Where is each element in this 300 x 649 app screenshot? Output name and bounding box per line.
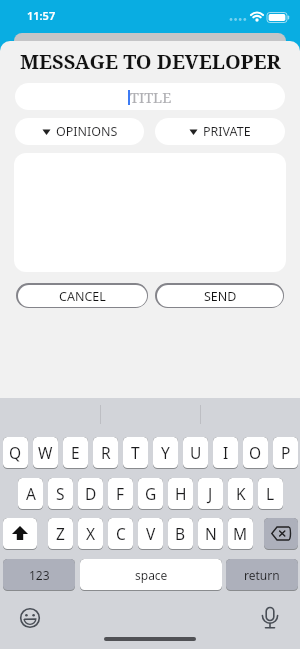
button[interactable]: OPINIONS xyxy=(15,118,144,145)
staticText: PRIVATE xyxy=(203,123,251,140)
staticText: space xyxy=(135,567,168,583)
button[interactable]: L xyxy=(258,478,283,510)
button[interactable]: W xyxy=(33,437,58,469)
button[interactable]: PRIVATE xyxy=(155,118,285,145)
staticText: B xyxy=(175,523,186,544)
staticText: N xyxy=(205,523,217,544)
staticText: E xyxy=(71,442,80,463)
staticText: OPINIONS xyxy=(56,123,118,140)
button[interactable]: F xyxy=(108,478,133,510)
button[interactable] xyxy=(3,518,37,550)
button[interactable] xyxy=(264,518,298,550)
button[interactable]: V xyxy=(138,518,163,550)
button[interactable] xyxy=(259,606,281,632)
staticText: V xyxy=(146,523,156,544)
staticText: U xyxy=(190,442,202,463)
staticText: R xyxy=(101,442,111,463)
button[interactable]: K xyxy=(228,478,253,510)
staticText: MESSAGE TO DEVELOPER xyxy=(20,48,281,75)
button[interactable]: TITLE xyxy=(15,83,285,110)
staticText: H xyxy=(175,483,187,504)
staticText: D xyxy=(85,483,97,504)
staticText: Q xyxy=(9,442,22,463)
button[interactable]: J xyxy=(198,478,223,510)
button[interactable]: CANCEL xyxy=(16,283,148,308)
staticText: A xyxy=(26,483,36,504)
button[interactable]: C xyxy=(108,518,133,550)
staticText: Y xyxy=(161,442,170,463)
button[interactable]: Z xyxy=(48,518,73,550)
staticText: CANCEL xyxy=(59,288,106,305)
button[interactable]: O xyxy=(243,437,268,469)
staticText: return xyxy=(244,567,280,583)
button[interactable]: G xyxy=(138,478,163,510)
button[interactable]: R xyxy=(93,437,118,469)
staticText: TITLE xyxy=(130,87,172,107)
button[interactable]: E xyxy=(63,437,88,469)
button[interactable]: space xyxy=(80,559,222,591)
button[interactable]: Y xyxy=(153,437,178,469)
staticText: K xyxy=(236,483,246,504)
button[interactable]: M xyxy=(228,518,253,550)
staticText: O xyxy=(249,442,262,463)
staticText: X xyxy=(86,523,96,544)
staticText: I xyxy=(223,442,229,463)
button[interactable]: P xyxy=(273,437,298,469)
button[interactable]: I xyxy=(213,437,238,469)
staticText: L xyxy=(266,483,275,504)
button[interactable]: D xyxy=(78,478,103,510)
staticText: S xyxy=(56,483,65,504)
button[interactable]: Q xyxy=(3,437,28,469)
staticText: SEND xyxy=(204,288,237,305)
button[interactable] xyxy=(19,607,41,629)
button[interactable]: U xyxy=(183,437,208,469)
staticText: 11:57 xyxy=(27,8,56,23)
button[interactable]: N xyxy=(198,518,223,550)
button[interactable]: X xyxy=(78,518,103,550)
button[interactable]: S xyxy=(48,478,73,510)
staticText: P xyxy=(281,442,291,463)
staticText: M xyxy=(233,523,248,544)
button[interactable]: B xyxy=(168,518,193,550)
staticText: Z xyxy=(56,523,65,544)
staticText: G xyxy=(145,483,157,504)
button[interactable]: H xyxy=(168,478,193,510)
staticText: W xyxy=(38,442,53,463)
button[interactable]: return xyxy=(226,559,298,591)
button[interactable]: 123 xyxy=(3,559,75,591)
button[interactable]: T xyxy=(123,437,148,469)
staticText: C xyxy=(116,523,126,544)
button[interactable]: A xyxy=(18,478,43,510)
staticText: T xyxy=(131,442,140,463)
staticText: 123 xyxy=(29,567,50,583)
staticText: J xyxy=(208,483,213,504)
button[interactable]: SEND xyxy=(155,283,284,308)
staticText: F xyxy=(116,483,125,504)
